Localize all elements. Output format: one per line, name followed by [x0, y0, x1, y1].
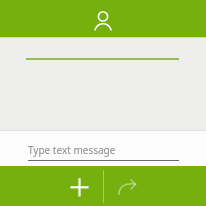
button[interactable]	[0, 166, 103, 206]
button[interactable]	[0, 0, 206, 37]
staticText: Type text message	[28, 143, 116, 157]
button[interactable]: Type text message	[0, 131, 206, 166]
button[interactable]	[104, 166, 206, 206]
